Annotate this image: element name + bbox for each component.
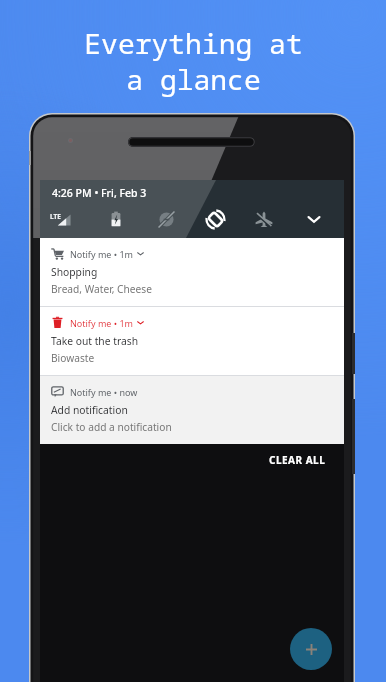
staticText: Shopping bbox=[51, 265, 98, 279]
staticText: Biowaste bbox=[51, 351, 95, 365]
staticText: Take out the trash bbox=[51, 334, 139, 348]
button[interactable]: Auto rotate bbox=[202, 206, 228, 232]
staticText: Notify me • 1m bbox=[70, 248, 134, 260]
staticText: Bread, Water, Cheese bbox=[51, 282, 152, 296]
staticText: CLEAR ALL bbox=[269, 453, 326, 467]
button[interactable]: Notify me • 1m bbox=[40, 307, 344, 375]
staticText: Everything at bbox=[84, 24, 303, 62]
staticText: Click to add a notification bbox=[51, 420, 172, 434]
staticText: Notify me • 1m bbox=[70, 317, 134, 329]
staticText: Notify me • now bbox=[70, 386, 138, 398]
button[interactable]: Notify me • 1m bbox=[40, 238, 344, 306]
button[interactable]: Add notification bbox=[290, 628, 332, 670]
button[interactable]: Mobile signal LTE bbox=[47, 206, 73, 232]
button[interactable]: CLEAR ALL bbox=[265, 449, 330, 471]
button[interactable]: Do not disturb bbox=[153, 206, 179, 232]
staticText: 4:26 PM • Fri, Feb 3 bbox=[52, 186, 147, 200]
button[interactable]: Battery charging bbox=[103, 206, 129, 232]
button[interactable]: Notify me • now bbox=[40, 376, 344, 444]
button[interactable]: Airplane mode bbox=[251, 206, 277, 232]
button[interactable]: Expand quick settings bbox=[301, 206, 327, 232]
staticText: Add notification bbox=[51, 403, 128, 417]
staticText: a glance bbox=[126, 60, 261, 98]
staticText: LTE bbox=[50, 212, 61, 221]
